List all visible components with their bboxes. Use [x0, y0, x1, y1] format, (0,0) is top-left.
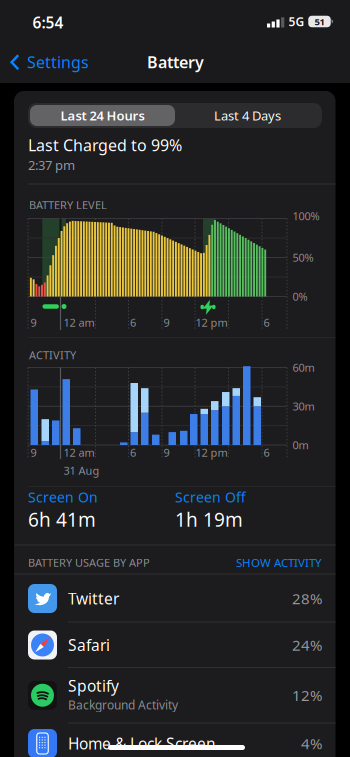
staticText: 12%	[292, 685, 322, 705]
staticText: 1h 19m	[175, 507, 243, 532]
staticText: 6h 41m	[28, 507, 96, 532]
staticText: 12 pm	[195, 315, 227, 330]
staticText: 9	[30, 445, 36, 460]
staticText: Last 24 Hours	[60, 107, 144, 124]
staticText: 28%	[292, 588, 322, 609]
staticText: 4%	[301, 733, 322, 754]
button[interactable]: SHOW ACTIVITY	[0, 0, 350, 757]
staticText: Screen Off	[175, 487, 246, 507]
staticText: 30m	[292, 399, 314, 414]
staticText: 12 pm	[195, 445, 227, 460]
staticText: Last Charged to 99%	[28, 134, 182, 156]
button[interactable]: Spotify	[14, 667, 335, 723]
staticText: 24%	[292, 635, 322, 655]
staticText: Background Activity	[68, 697, 178, 713]
button[interactable]: Settings	[10, 46, 160, 78]
staticText: 6	[263, 445, 269, 460]
button[interactable]: Last 4 Days	[175, 105, 320, 126]
staticText: 60m	[292, 360, 314, 375]
staticText: 6	[130, 315, 136, 330]
staticText: 6	[263, 315, 269, 330]
staticText: 51	[314, 15, 324, 28]
staticText: ACTIVITY	[29, 347, 76, 362]
staticText: Home & Lock Screen	[68, 733, 216, 754]
staticText: 9	[163, 315, 169, 330]
button[interactable]: Twitter	[14, 574, 335, 622]
staticText: 12 am	[63, 445, 94, 460]
staticText: 6:54	[32, 12, 63, 33]
button[interactable]: Safari	[14, 622, 335, 667]
button[interactable]: Last 24 Hours	[30, 105, 175, 126]
staticText: 9	[163, 445, 169, 460]
staticText: 6	[130, 445, 136, 460]
staticText: 100%	[292, 208, 319, 223]
staticText: 0m	[292, 437, 308, 452]
staticText: SHOW ACTIVITY	[236, 555, 322, 570]
staticText: 5G	[288, 13, 304, 30]
button[interactable]: Home & Lock Screen	[14, 722, 335, 757]
staticText: BATTERY LEVEL	[29, 197, 107, 212]
staticText: Battery	[147, 51, 204, 73]
staticText: 0%	[292, 289, 307, 304]
staticText: 31 Aug	[63, 463, 99, 478]
staticText: Last 4 Days	[214, 107, 281, 124]
staticText: Spotify	[68, 675, 119, 696]
staticText: Twitter	[68, 588, 119, 609]
staticText: 12 am	[63, 315, 94, 330]
staticText: BATTERY USAGE BY APP	[28, 555, 150, 570]
staticText: Settings	[27, 51, 89, 73]
staticText: Safari	[68, 634, 110, 655]
staticText: Screen On	[28, 487, 98, 507]
staticText: 2:37 pm	[28, 156, 75, 174]
staticText: 9	[30, 315, 36, 330]
staticText: 50%	[292, 250, 313, 265]
